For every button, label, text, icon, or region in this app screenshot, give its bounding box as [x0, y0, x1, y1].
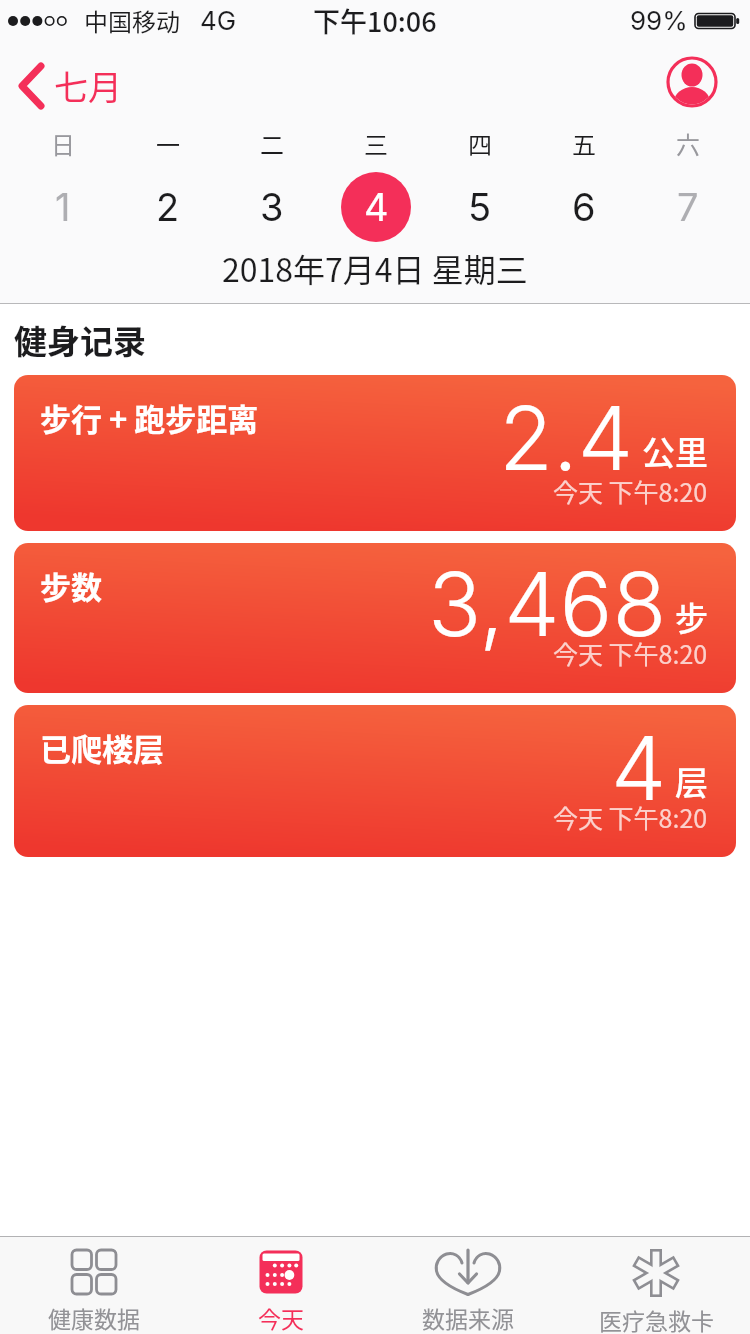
- staticText: 中国移动: [84, 3, 180, 38]
- button[interactable]: 2: [133, 172, 203, 242]
- staticText: 日: [51, 126, 75, 161]
- staticText: 2018年7月4日 星期三: [222, 245, 528, 291]
- button[interactable]: 6: [549, 172, 619, 242]
- staticText: 层: [675, 757, 708, 805]
- staticText: 数据来源: [422, 1301, 514, 1334]
- button[interactable]: 3: [237, 172, 307, 242]
- staticText: 三: [364, 126, 388, 161]
- staticText: 一: [156, 126, 180, 161]
- staticText: 今天: [258, 1301, 304, 1334]
- staticText: 99%: [630, 5, 688, 36]
- staticText: 五: [572, 126, 596, 161]
- staticText: 4: [364, 184, 389, 230]
- button[interactable]: 七月: [18, 61, 122, 110]
- staticText: 3,468: [428, 551, 667, 657]
- staticText: 6: [572, 184, 596, 230]
- staticText: 下午10:06: [313, 1, 437, 40]
- staticText: 四: [468, 126, 492, 161]
- staticText: 七月: [54, 61, 122, 110]
- staticText: 2.4: [499, 385, 634, 491]
- button[interactable]: [666, 56, 718, 108]
- staticText: 4: [611, 715, 667, 821]
- button[interactable]: 今天: [187, 1237, 374, 1334]
- staticText: 7: [677, 184, 699, 230]
- staticText: 步数: [40, 563, 102, 608]
- staticText: 医疗急救卡: [599, 1303, 714, 1334]
- staticText: 今天 下午8:20: [553, 473, 708, 509]
- staticText: 已爬楼层: [40, 725, 164, 770]
- staticText: 今天 下午8:20: [553, 799, 708, 835]
- staticText: 二: [260, 126, 284, 161]
- staticText: 4G: [200, 5, 237, 36]
- staticText: 六: [676, 126, 700, 161]
- staticText: 5: [468, 184, 492, 230]
- button[interactable]: 5: [445, 172, 515, 242]
- button[interactable]: 步行 + 跑步距离: [14, 375, 736, 531]
- staticText: 公里: [642, 427, 708, 475]
- staticText: 步行 + 跑步距离: [40, 395, 259, 440]
- staticText: 今天 下午8:20: [553, 635, 708, 671]
- button[interactable]: 健康数据: [0, 1237, 187, 1334]
- button[interactable]: 1: [28, 172, 98, 242]
- button[interactable]: 已爬楼层: [14, 705, 736, 857]
- button[interactable]: 数据来源: [374, 1237, 562, 1334]
- button[interactable]: 4: [341, 172, 411, 242]
- button[interactable]: 步数: [14, 543, 736, 693]
- button[interactable]: 医疗急救卡: [562, 1237, 750, 1334]
- staticText: 步: [675, 593, 708, 641]
- staticText: 1: [55, 184, 71, 230]
- staticText: 健康数据: [48, 1301, 140, 1334]
- staticText: 2: [156, 184, 180, 230]
- button[interactable]: 7: [653, 172, 723, 242]
- staticText: 3: [260, 184, 284, 230]
- staticText: 健身记录: [14, 316, 146, 364]
